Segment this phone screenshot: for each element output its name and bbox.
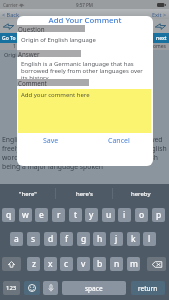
button[interactable]: j [110,232,123,246]
staticText: f [65,233,68,245]
staticText: here's [76,190,93,198]
staticText: a [14,233,19,245]
staticText: Question [18,25,45,32]
staticText: "here" [19,190,37,198]
staticText: next [156,35,167,42]
staticText: omes [153,43,166,50]
staticText: g [81,233,87,245]
staticText: v [81,258,86,270]
staticText: Answer [18,50,40,57]
staticText: Exit > [152,11,167,18]
staticText: q [6,209,12,221]
staticText: Save [43,136,59,145]
staticText: Cancel [108,136,130,145]
button[interactable]: l [143,232,156,246]
button[interactable]: c [60,257,73,271]
staticText: 1 [13,43,16,50]
button[interactable]: z [27,257,40,271]
staticText: z [32,258,36,270]
staticText: hereby [131,190,151,198]
staticText: English is a Germanic language that has … [21,60,149,80]
staticText: Go To [2,35,16,42]
staticText: 123 [6,284,17,292]
staticText: i [123,209,126,221]
button[interactable]: Dictation [43,281,58,295]
button[interactable]: return [131,281,165,295]
button[interactable]: a [10,232,23,246]
button[interactable]: h [93,232,106,246]
staticText: 9:57 PM [76,2,93,8]
staticText: Add Your Comment [17,16,153,26]
staticText: return [138,284,158,293]
button[interactable]: p [152,208,165,222]
button[interactable]: Add your comment here [18,89,151,133]
button[interactable]: m [127,257,140,271]
button[interactable]: s [27,232,40,246]
staticText: n [114,258,120,270]
button[interactable]: y [85,208,98,222]
staticText: p [156,209,162,221]
staticText: x [48,258,53,270]
staticText: English is a Germanic language that has … [2,135,168,171]
staticText: space [85,284,103,293]
button[interactable]: n [110,257,123,271]
button[interactable]: Emoji [24,281,40,295]
staticText: Carrier [3,2,18,8]
button[interactable]: q [2,208,15,222]
staticText: m [130,258,138,270]
staticText: w [22,209,29,221]
button[interactable]: e [35,208,48,222]
button[interactable]: < Back [0,10,22,19]
staticText: t [74,209,78,221]
button[interactable]: r [52,208,65,222]
button[interactable]: g [77,232,90,246]
button[interactable]: f [60,232,73,246]
staticText: h [97,233,103,245]
staticText: < Back [2,11,20,18]
button[interactable]: hereby [113,184,169,203]
button[interactable]: o [135,208,148,222]
button[interactable]: x [44,257,57,271]
staticText: u [106,209,112,221]
button[interactable]: Shift [2,257,21,271]
staticText: Origin of English language [21,36,96,44]
staticText: k [131,233,136,245]
button[interactable]: "here" [0,184,55,203]
button[interactable]: u [102,208,115,222]
button[interactable]: d [44,232,57,246]
button[interactable]: here's [56,184,112,203]
staticText: Origin of English language [4,51,73,58]
button[interactable]: i [118,208,131,222]
staticText: Comment [18,79,47,86]
button[interactable]: Save [17,136,85,145]
staticText: o [139,209,145,221]
staticText: y [89,209,94,221]
button[interactable]: Share [2,21,15,32]
button[interactable]: b [93,257,106,271]
staticText: l [148,233,151,245]
button[interactable]: k [127,232,140,246]
staticText: b [97,258,103,270]
button[interactable]: w [19,208,32,222]
staticText: r [57,209,61,221]
button[interactable]: 123 [3,281,20,295]
button[interactable]: Exit > [150,10,169,19]
staticText: j [115,233,118,245]
button[interactable]: Backspace [147,257,166,271]
button[interactable]: Cancel [85,136,153,145]
button[interactable]: v [77,257,90,271]
button[interactable]: t [69,208,82,222]
staticText: Add your comment here [21,91,90,99]
staticText: s [31,233,36,245]
button[interactable]: space [62,281,126,295]
staticText: c [64,258,69,270]
button[interactable]: Go To [0,33,169,43]
button[interactable]: Forward [154,21,167,32]
staticText: d [48,233,54,245]
staticText: e [39,209,44,221]
